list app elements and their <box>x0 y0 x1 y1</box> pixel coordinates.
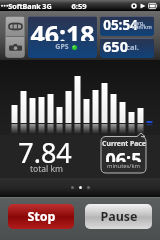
staticText: cal. <box>126 42 139 52</box>
staticText: 46:18 <box>30 17 95 41</box>
staticText: Stop <box>27 208 56 225</box>
staticText: Pause <box>100 208 138 225</box>
staticText: 7.84 <box>18 134 72 164</box>
staticText: GPS <box>55 42 69 52</box>
staticText: 6:59 <box>71 1 87 11</box>
staticText: Current Pace <box>102 139 146 147</box>
staticText: 05:54 <box>103 16 138 34</box>
staticText: SoftBank <box>8 1 41 11</box>
button[interactable]: Stop <box>8 204 74 229</box>
staticText: min/km <box>132 24 152 31</box>
staticText: 06:55 <box>101 147 146 162</box>
button[interactable]: Camera <box>6 37 24 57</box>
staticText: avg. <box>133 19 145 26</box>
staticText: total km <box>30 163 63 173</box>
staticText: minutes/km <box>107 162 140 170</box>
staticText: 650 <box>103 38 128 56</box>
button[interactable]: Pause <box>85 204 152 229</box>
staticText: 3G <box>42 1 52 11</box>
button[interactable]: Map <box>6 17 24 36</box>
